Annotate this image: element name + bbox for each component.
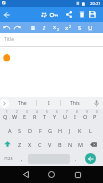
button[interactable]: I xyxy=(70,109,80,123)
button[interactable]: ?123 xyxy=(0,151,17,166)
button[interactable]: , xyxy=(17,151,27,166)
button[interactable]: I xyxy=(37,97,60,109)
staticText: , xyxy=(21,155,23,162)
staticText: . xyxy=(75,155,77,162)
button[interactable] xyxy=(27,151,71,166)
staticText: K xyxy=(78,127,82,134)
button[interactable] xyxy=(81,151,100,166)
staticText: B xyxy=(31,24,35,32)
button[interactable]: W xyxy=(10,109,20,123)
button[interactable]: P xyxy=(90,109,100,123)
staticText: X xyxy=(28,141,32,148)
button[interactable]: B xyxy=(55,137,65,151)
button[interactable]: A xyxy=(5,123,15,137)
button[interactable] xyxy=(90,97,103,109)
button[interactable]: N xyxy=(65,137,75,151)
staticText: The xyxy=(18,100,27,107)
button[interactable]: D xyxy=(25,123,35,137)
button[interactable] xyxy=(39,7,48,22)
button[interactable] xyxy=(43,166,60,183)
staticText: x xyxy=(65,24,69,32)
staticText: 2 xyxy=(69,24,72,29)
button[interactable]: V xyxy=(45,137,55,151)
staticText: R xyxy=(33,113,37,120)
button[interactable]: The xyxy=(9,97,36,109)
staticText: N xyxy=(68,141,73,148)
staticText: 2 xyxy=(16,110,18,114)
staticText: A xyxy=(8,127,12,134)
staticText: I xyxy=(48,100,50,107)
staticText: O xyxy=(83,113,88,120)
button[interactable]: O xyxy=(80,109,90,123)
button[interactable]: G xyxy=(45,123,55,137)
staticText: 5 xyxy=(46,110,48,114)
button[interactable] xyxy=(0,137,15,151)
button[interactable]: R xyxy=(30,109,40,123)
staticText: This xyxy=(70,100,80,107)
button[interactable]: U xyxy=(60,109,70,123)
button[interactable] xyxy=(77,7,87,22)
staticText: M xyxy=(78,141,83,148)
button[interactable]: Q xyxy=(0,109,10,123)
staticText: I xyxy=(43,24,45,32)
staticText: 7 xyxy=(66,110,68,114)
button[interactable]: C xyxy=(35,137,45,151)
staticText: Z xyxy=(18,141,22,148)
button[interactable]: . xyxy=(71,151,81,166)
button[interactable] xyxy=(85,137,101,151)
staticText: L xyxy=(89,127,92,134)
staticText: I xyxy=(74,113,76,120)
staticText: T xyxy=(43,113,47,120)
button[interactable]: x xyxy=(51,22,62,33)
staticText: J xyxy=(69,127,71,134)
button[interactable]: H xyxy=(55,123,65,137)
staticText: 3 xyxy=(26,110,28,114)
button[interactable] xyxy=(0,22,12,33)
button[interactable] xyxy=(17,166,34,183)
staticText: Y xyxy=(53,113,57,120)
staticText: B xyxy=(58,141,62,148)
staticText: U xyxy=(63,113,68,120)
staticText: Title xyxy=(4,36,14,43)
button[interactable] xyxy=(69,166,86,183)
staticText: U xyxy=(88,24,93,32)
button[interactable]: S xyxy=(74,22,85,33)
button[interactable]: J xyxy=(65,123,75,137)
staticText: 4 xyxy=(36,110,38,114)
staticText: P xyxy=(93,113,97,120)
button[interactable]: x xyxy=(63,22,74,33)
staticText: H xyxy=(58,127,63,134)
button[interactable]: Z xyxy=(15,137,25,151)
button[interactable]: U xyxy=(85,22,96,33)
button[interactable]: Y xyxy=(50,109,60,123)
staticText: Q xyxy=(3,113,8,120)
staticText: W xyxy=(12,113,18,120)
button[interactable] xyxy=(64,7,74,22)
button[interactable] xyxy=(49,7,59,22)
button[interactable] xyxy=(11,22,23,33)
staticText: S xyxy=(18,127,22,134)
button[interactable]: K xyxy=(75,123,85,137)
staticText: 8 xyxy=(76,110,78,114)
button[interactable]: L xyxy=(85,123,95,137)
button[interactable]: M xyxy=(75,137,85,151)
button[interactable] xyxy=(0,7,14,22)
staticText: C xyxy=(38,141,42,148)
staticText: S xyxy=(78,24,82,32)
button[interactable] xyxy=(87,7,98,22)
button[interactable]: I xyxy=(38,22,49,33)
button[interactable]: This xyxy=(61,97,88,109)
button[interactable]: X xyxy=(25,137,35,151)
staticText: 2 xyxy=(57,27,60,32)
button[interactable] xyxy=(0,99,9,108)
button[interactable]: F xyxy=(35,123,45,137)
staticText: E xyxy=(23,113,27,120)
staticText: 9 xyxy=(86,110,88,114)
button[interactable]: E xyxy=(20,109,30,123)
button[interactable]: T xyxy=(40,109,50,123)
staticText: x xyxy=(53,23,57,31)
button[interactable]: Title xyxy=(0,33,103,46)
staticText: 6 xyxy=(56,110,58,114)
button[interactable]: S xyxy=(15,123,25,137)
button[interactable]: B xyxy=(27,22,38,33)
